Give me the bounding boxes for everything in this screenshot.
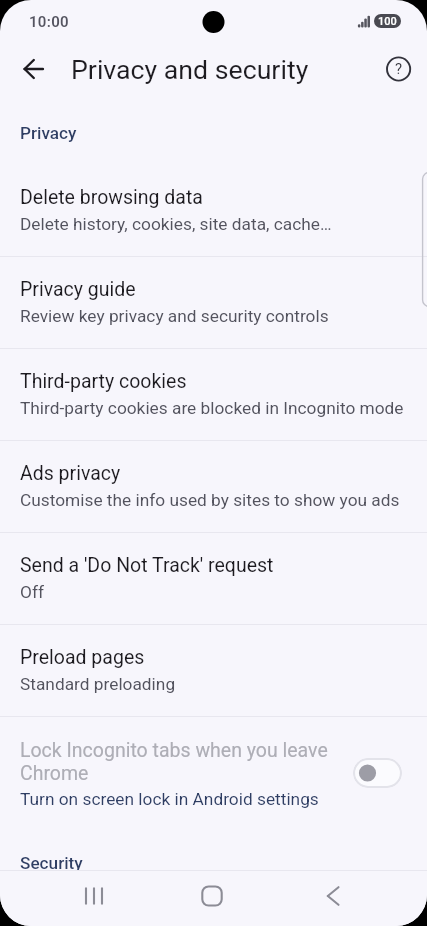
staticText: Turn on screen lock in Android settings: [20, 789, 319, 809]
button[interactable]: Lock Incognito tabs toggle: [353, 758, 402, 788]
button[interactable]: Third-party cookies: [0, 349, 427, 440]
button[interactable]: Back: [309, 872, 357, 920]
staticText: Ads privacy: [20, 462, 121, 485]
button[interactable]: Recent apps: [70, 872, 118, 920]
button[interactable]: Privacy guide: [0, 257, 427, 348]
staticText: Security: [20, 853, 83, 870]
button[interactable]: Home: [188, 872, 236, 920]
staticText: ?: [395, 60, 403, 78]
staticText: Off: [20, 582, 44, 602]
staticText: Privacy guide: [20, 278, 136, 301]
staticText: 100: [378, 15, 397, 28]
button[interactable]: Delete browsing data: [0, 165, 427, 256]
button[interactable]: Send a 'Do Not Track' request: [0, 533, 427, 624]
staticText: Send a 'Do Not Track' request: [20, 554, 274, 577]
staticText: Lock Incognito tabs when you leave Chrom…: [20, 739, 337, 785]
staticText: Preload pages: [20, 646, 145, 669]
staticText: Third-party cookies: [20, 370, 187, 393]
button[interactable]: Help: [377, 47, 421, 91]
button[interactable]: Ads privacy: [0, 441, 427, 532]
staticText: Review key privacy and security controls: [20, 306, 329, 326]
staticText: Delete browsing data: [20, 186, 203, 209]
staticText: Privacy and security: [71, 54, 309, 85]
staticText: Delete history, cookies, site data, cach…: [20, 214, 332, 234]
staticText: Third-party cookies are blocked in Incog…: [20, 398, 404, 418]
staticText: Standard preloading: [20, 674, 176, 694]
staticText: 10:00: [29, 13, 69, 31]
staticText: Privacy: [20, 123, 77, 143]
button[interactable]: Back: [11, 47, 55, 91]
button[interactable]: Preload pages: [0, 625, 427, 716]
staticText: Customise the info used by sites to show…: [20, 490, 400, 510]
button[interactable]: Lock Incognito tabs when you leave Chrom…: [0, 717, 427, 831]
